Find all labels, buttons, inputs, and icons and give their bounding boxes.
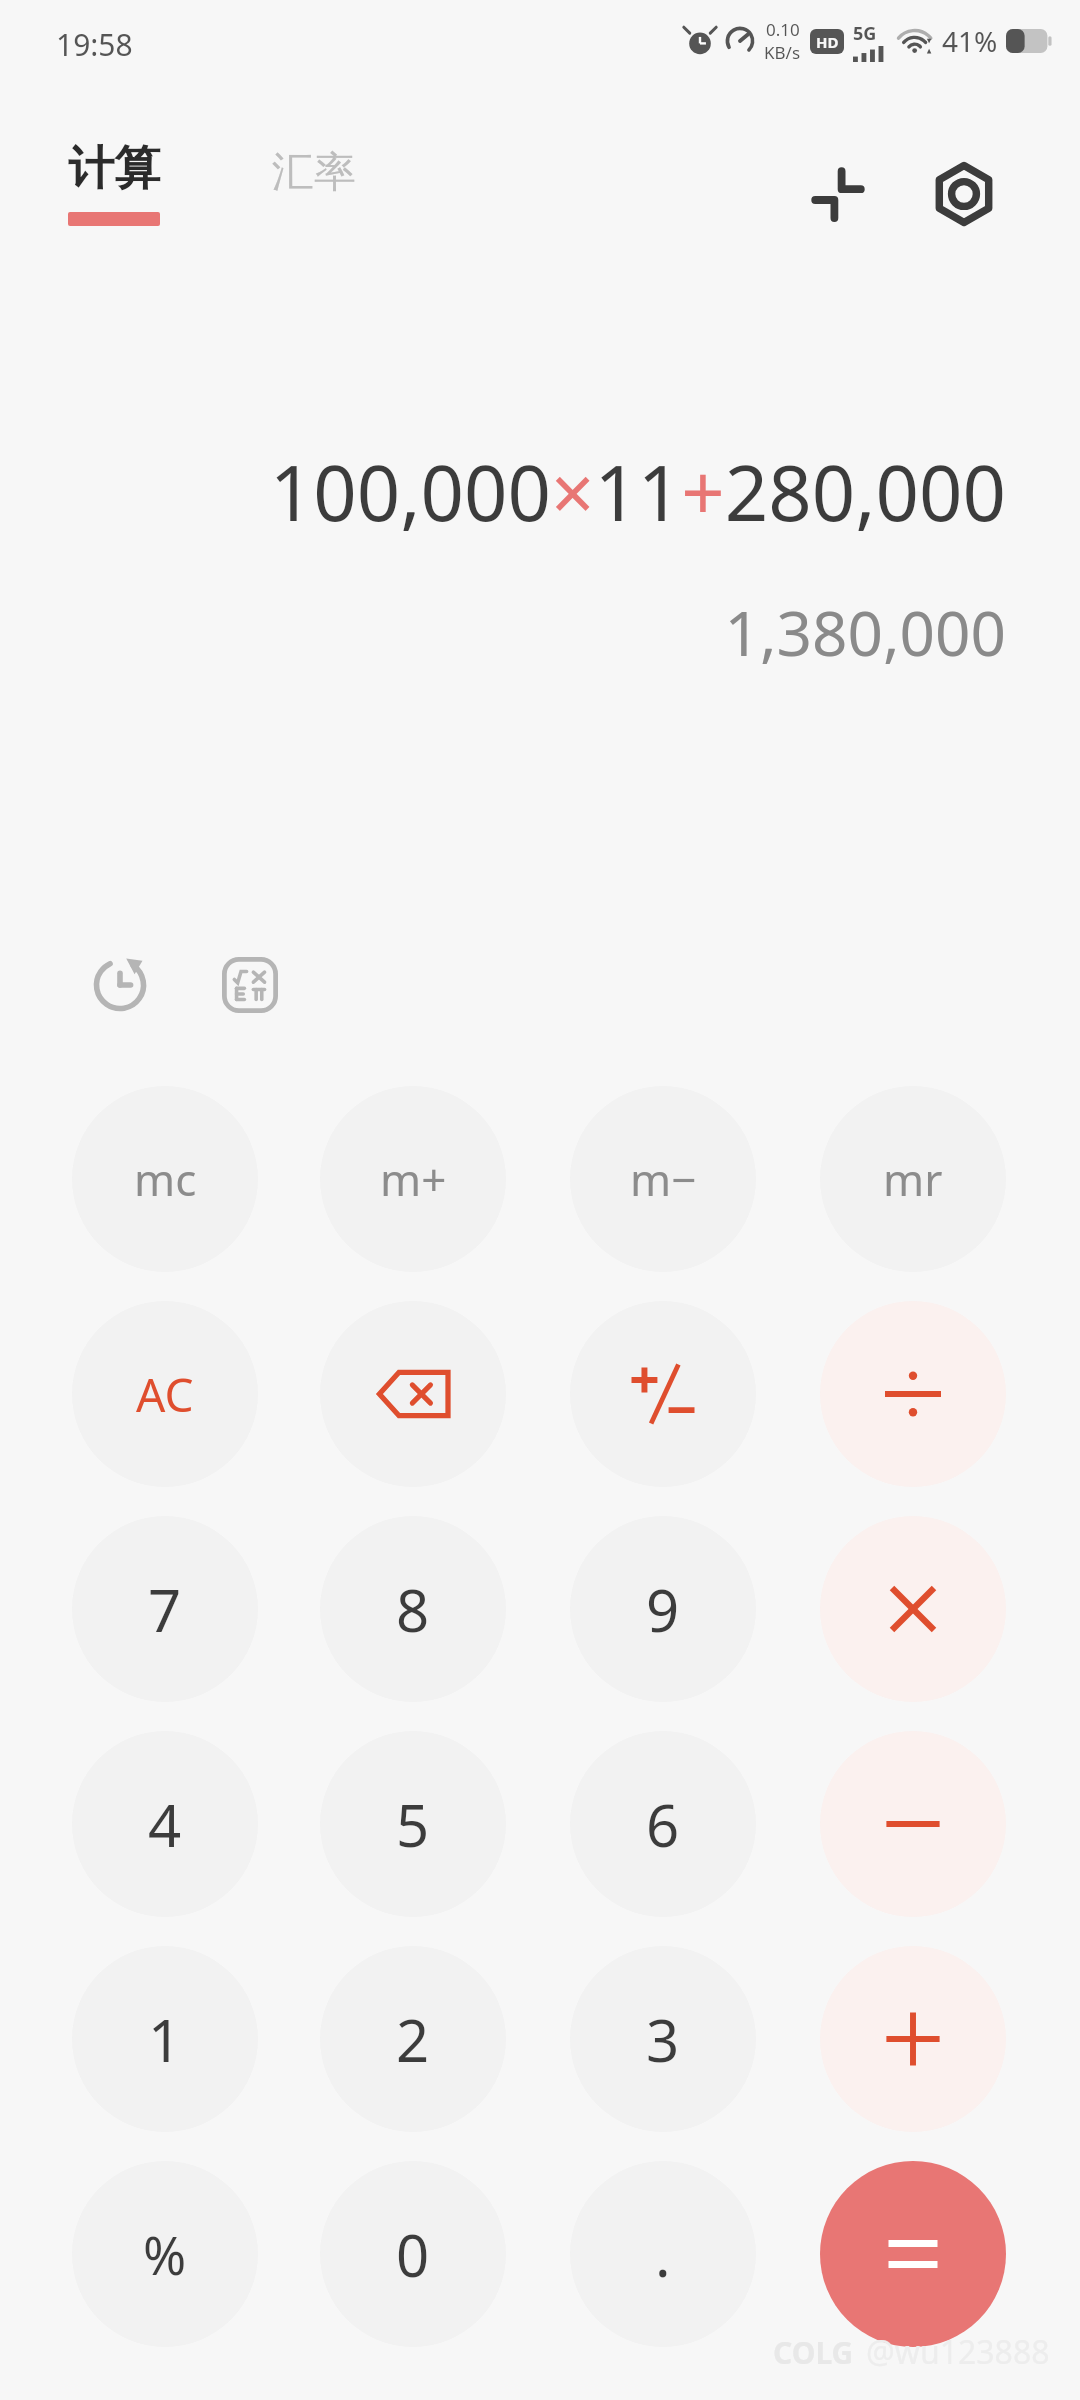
staticText: m+	[380, 1149, 447, 1209]
staticText: 41%	[942, 22, 998, 60]
staticText: KB/s	[764, 41, 801, 64]
button[interactable]: 汇率	[272, 146, 356, 199]
staticText: %	[143, 2219, 187, 2290]
staticText: m−	[630, 1149, 697, 1209]
button[interactable]: AC	[72, 1301, 258, 1487]
button[interactable]: 6	[570, 1731, 756, 1917]
staticText: mr	[883, 1149, 943, 1209]
staticText: 9	[646, 1570, 680, 1649]
staticText: 5	[396, 1785, 430, 1864]
staticText: 8	[396, 1570, 430, 1649]
button[interactable]: Minus	[820, 1731, 1006, 1917]
button[interactable]: Collapse	[790, 146, 886, 242]
staticText: 19:58	[56, 24, 133, 65]
button[interactable]: History	[80, 945, 160, 1025]
button[interactable]: 5	[320, 1731, 506, 1917]
staticText: 2	[396, 2000, 430, 2079]
button[interactable]: Plus minus	[570, 1301, 756, 1487]
staticText: COLG	[773, 2332, 854, 2373]
button[interactable]: Scientific mode	[210, 945, 290, 1025]
button[interactable]: m−	[570, 1086, 756, 1272]
button[interactable]: 1	[72, 1946, 258, 2132]
staticText: mc	[134, 1149, 197, 1209]
button[interactable]: 2	[320, 1946, 506, 2132]
staticText: 0	[396, 2215, 430, 2294]
button[interactable]: %	[72, 2161, 258, 2347]
staticText: 6	[646, 1785, 680, 1864]
staticText: 5G	[853, 21, 877, 46]
staticText: 0.10	[766, 18, 800, 41]
staticText: 1,380,000	[0, 590, 1006, 674]
button[interactable]: 4	[72, 1731, 258, 1917]
staticText: 计算	[68, 140, 160, 198]
button[interactable]: 7	[72, 1516, 258, 1702]
button[interactable]: 3	[570, 1946, 756, 2132]
staticText: @wu123888	[866, 2330, 1050, 2374]
staticText: 4	[148, 1785, 182, 1864]
staticText: .	[655, 2215, 671, 2294]
button[interactable]: Settings	[916, 146, 1012, 242]
button[interactable]: 9	[570, 1516, 756, 1702]
button[interactable]: Divide	[820, 1301, 1006, 1487]
staticText: 3	[646, 2000, 680, 2079]
staticText: 100,000×11+280,000	[0, 440, 1006, 544]
staticText: 1	[148, 2000, 182, 2079]
button[interactable]: 计算	[68, 140, 160, 226]
button[interactable]: mc	[72, 1086, 258, 1272]
button[interactable]: Equals	[820, 2161, 1006, 2347]
button[interactable]: m+	[320, 1086, 506, 1272]
button[interactable]: 0	[320, 2161, 506, 2347]
button[interactable]: Multiply	[820, 1516, 1006, 1702]
staticText: 7	[148, 1570, 182, 1649]
button[interactable]: Backspace	[320, 1301, 506, 1487]
button[interactable]: 8	[320, 1516, 506, 1702]
staticText: AC	[136, 1363, 194, 1426]
button[interactable]: Plus	[820, 1946, 1006, 2132]
button[interactable]: .	[570, 2161, 756, 2347]
staticText: HD	[816, 32, 839, 52]
button[interactable]: mr	[820, 1086, 1006, 1272]
